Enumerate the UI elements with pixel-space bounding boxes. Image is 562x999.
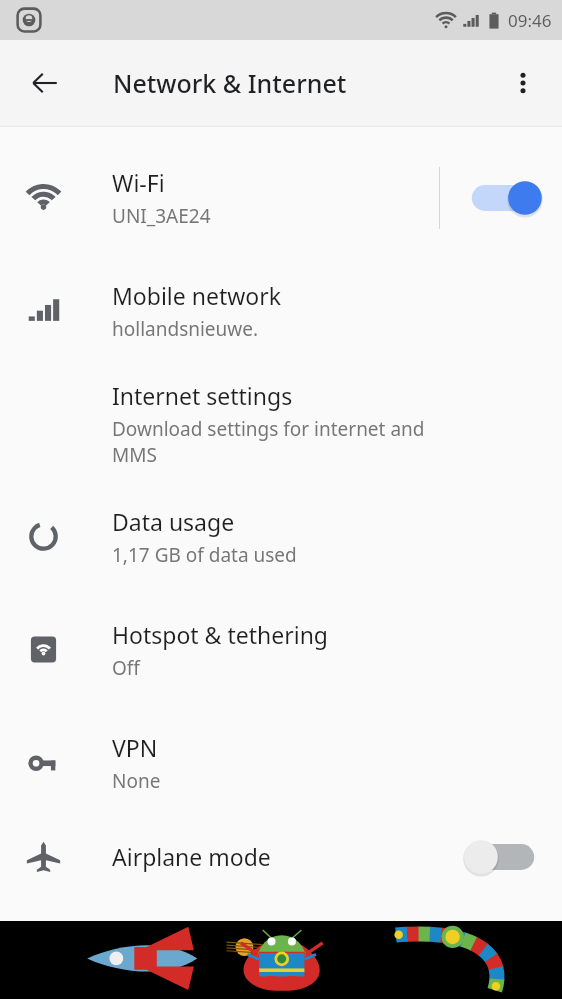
staticText: hollandsnieuwe. [112, 316, 259, 342]
button[interactable]: Airplane mode [0, 819, 562, 894]
button[interactable]: Mobile network [0, 254, 562, 367]
button[interactable]: VPN [0, 706, 562, 819]
staticText: Airplane mode [112, 841, 271, 872]
button[interactable]: Back [20, 58, 70, 108]
staticText: Download settings for internet and MMS [112, 416, 442, 468]
staticText: None [112, 768, 161, 794]
staticText: VPN [112, 732, 158, 763]
staticText: UNI_3AE24 [112, 203, 211, 229]
button[interactable]: More options [500, 60, 546, 106]
staticText: 1,17 GB of data used [112, 542, 297, 568]
button[interactable]: Hotspot & tethering [0, 593, 562, 706]
staticText: Network & Internet [113, 66, 347, 100]
button[interactable]: Wi-Fi switch [464, 170, 542, 226]
button[interactable]: Data usage [0, 480, 562, 593]
button[interactable]: Internet settings [0, 367, 562, 480]
button[interactable]: Wi-Fi [0, 141, 562, 254]
staticText: Internet settings [112, 380, 293, 411]
staticText: Mobile network [112, 280, 282, 311]
button[interactable]: Airplane mode switch [464, 829, 542, 885]
staticText: Off [112, 655, 140, 681]
staticText: Hotspot & tethering [112, 619, 328, 650]
staticText: Wi-Fi [112, 167, 165, 198]
staticText: Data usage [112, 506, 235, 537]
staticText: 09:46 [508, 9, 552, 32]
